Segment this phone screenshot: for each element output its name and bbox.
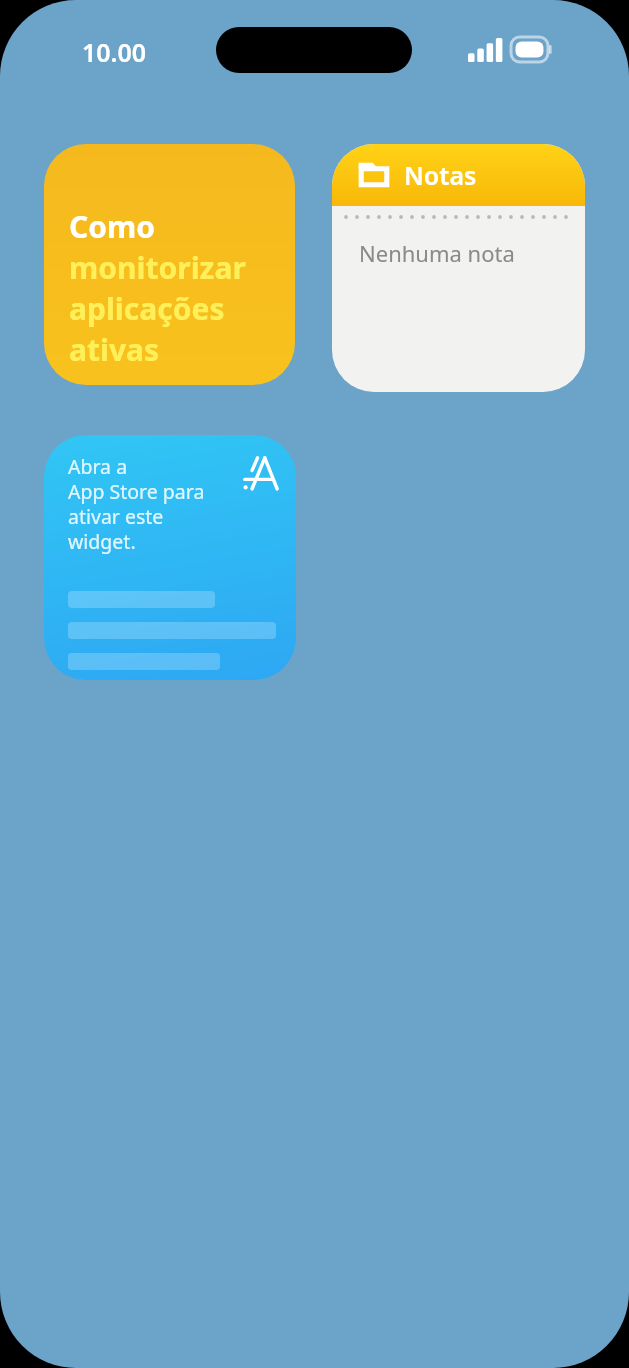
button[interactable]: Abra a App Store para ativar este widget…: [44, 435, 296, 680]
staticText: Como: [69, 206, 156, 247]
staticText: 10.00: [82, 35, 147, 69]
staticText: Notas: [404, 158, 477, 192]
staticText: Abra a App Store para ativar este widget…: [68, 453, 205, 554]
staticText: monitorizar aplicações ativas: [69, 247, 246, 370]
button[interactable]: Notas: [332, 144, 585, 392]
other: App Store: [240, 453, 280, 493]
button[interactable]: Como: [44, 144, 295, 385]
staticText: Nenhuma nota: [359, 238, 515, 268]
